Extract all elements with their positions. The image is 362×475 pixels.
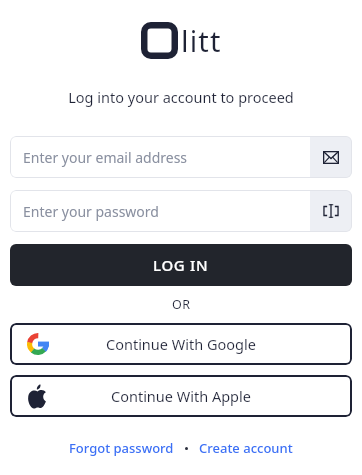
- button[interactable]: Continue With Apple: [10, 375, 352, 417]
- staticText: Create account: [199, 439, 293, 457]
- button[interactable]: LOG IN: [10, 244, 352, 286]
- staticText: LOG IN: [153, 255, 209, 275]
- button[interactable]: Email: [310, 136, 352, 178]
- staticText: Forgot password: [69, 439, 174, 457]
- staticText: Continue With Apple: [111, 386, 251, 406]
- button[interactable]: Forgot password: [69, 439, 174, 457]
- button[interactable]: Create account: [199, 439, 293, 457]
- staticText: OR: [172, 296, 191, 313]
- staticText: Enter your password: [23, 202, 159, 221]
- staticText: Log into your account to proceed: [68, 87, 294, 107]
- staticText: Continue With Google: [106, 334, 256, 354]
- staticText: litt: [181, 21, 222, 60]
- button[interactable]: Show password: [310, 190, 352, 232]
- button[interactable]: Continue With Google: [10, 323, 352, 365]
- staticText: Enter your email address: [23, 148, 188, 167]
- button[interactable]: Enter your password: [10, 190, 352, 232]
- button[interactable]: Enter your email address: [10, 136, 352, 178]
